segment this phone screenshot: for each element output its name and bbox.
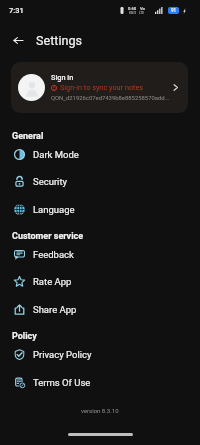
staticText: Rate App [33, 276, 72, 287]
staticText: Sign-in to sync your notes [60, 83, 144, 92]
button[interactable]: Dark Mode [0, 140, 200, 168]
button[interactable]: Security [0, 167, 200, 195]
button[interactable]: Language [0, 195, 200, 223]
staticText: QON_d21926c07ed7439b8e885258570add... [51, 95, 170, 102]
staticText: 91 [171, 8, 177, 13]
staticText: Customer service [12, 231, 84, 242]
button[interactable]: Privacy Policy [0, 340, 200, 368]
staticText: Sign in [51, 73, 74, 82]
button[interactable]: Share App [0, 295, 200, 323]
staticText: Security [33, 176, 68, 187]
staticText: Feedback [33, 249, 74, 260]
button[interactable]: Feedback [0, 240, 200, 268]
staticText: 0.60 [128, 6, 137, 11]
staticText: Dark Mode [33, 149, 79, 160]
staticText: version 8.3.10 [81, 407, 119, 414]
button[interactable]: Back [6, 28, 30, 52]
button[interactable]: Sign in [11, 62, 188, 113]
staticText: General [12, 131, 44, 142]
staticText: KB/S [129, 11, 137, 15]
button[interactable]: Terms Of Use [0, 368, 200, 396]
staticText: Vo [140, 6, 145, 11]
staticText: LTE [139, 11, 145, 15]
button[interactable]: Rate App [0, 267, 200, 295]
staticText: Privacy Policy [33, 349, 92, 360]
staticText: Terms Of Use [33, 377, 91, 388]
staticText: Share App [33, 304, 77, 315]
staticText: Settings [36, 33, 82, 48]
staticText: 7:31 [9, 6, 24, 15]
staticText: Policy [12, 331, 37, 342]
staticText: Language [33, 204, 75, 215]
